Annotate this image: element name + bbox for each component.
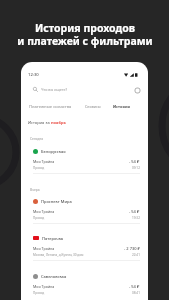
- staticText: История проходов и платежей с фильтрами: [17, 21, 153, 48]
- staticText: ноябрь: [51, 120, 66, 125]
- button[interactable]: Савеловская: [21, 272, 148, 300]
- staticText: Пятерочка: [42, 236, 64, 241]
- staticText: Проспект Мира: [41, 199, 72, 204]
- staticText: Моя Тройка: [33, 159, 55, 164]
- button[interactable]: Поиск: [33, 84, 130, 95]
- button[interactable]: Сервисы: [84, 103, 102, 109]
- button[interactable]: Проспект Мира: [21, 197, 148, 229]
- staticText: 19:32: [132, 216, 140, 220]
- staticText: - 54 ₽: [129, 209, 140, 214]
- staticText: 22:41: [132, 253, 140, 257]
- staticText: Что вы ищете?: [41, 87, 68, 92]
- button[interactable]: История: [112, 103, 131, 109]
- staticText: - 54 ₽: [129, 159, 140, 164]
- staticText: История: [113, 104, 130, 108]
- button[interactable]: Пятерочка: [21, 234, 148, 266]
- button[interactable]: История за: [28, 119, 148, 125]
- staticText: 12:30: [28, 72, 39, 78]
- staticText: Проход: [33, 216, 45, 220]
- staticText: Белорусская: [41, 149, 66, 154]
- staticText: Моя Тройка: [33, 246, 55, 251]
- staticText: Москва, Ленина, д.Кузнец 30 дом: [33, 253, 84, 257]
- staticText: История за: [28, 120, 51, 125]
- staticText: Моя Тройка: [33, 209, 55, 214]
- staticText: Платежные средства: [29, 104, 72, 108]
- button[interactable]: Платежные средства: [28, 103, 73, 109]
- staticText: - 2 730 ₽: [124, 246, 140, 251]
- staticText: Сервисы: [85, 104, 101, 108]
- staticText: Моя Тройка: [33, 284, 55, 289]
- staticText: Проход: [33, 166, 45, 170]
- staticText: 09:12: [132, 166, 140, 170]
- staticText: Проход: [33, 291, 45, 295]
- staticText: Савеловская: [41, 274, 67, 279]
- button[interactable]: Профиль: [133, 86, 141, 94]
- staticText: - 54 ₽: [129, 284, 140, 289]
- staticText: Сегодня: [30, 136, 44, 140]
- staticText: Вчера: [30, 187, 40, 191]
- staticText: 08:41: [132, 291, 140, 295]
- button[interactable]: Белорусская: [21, 147, 148, 179]
